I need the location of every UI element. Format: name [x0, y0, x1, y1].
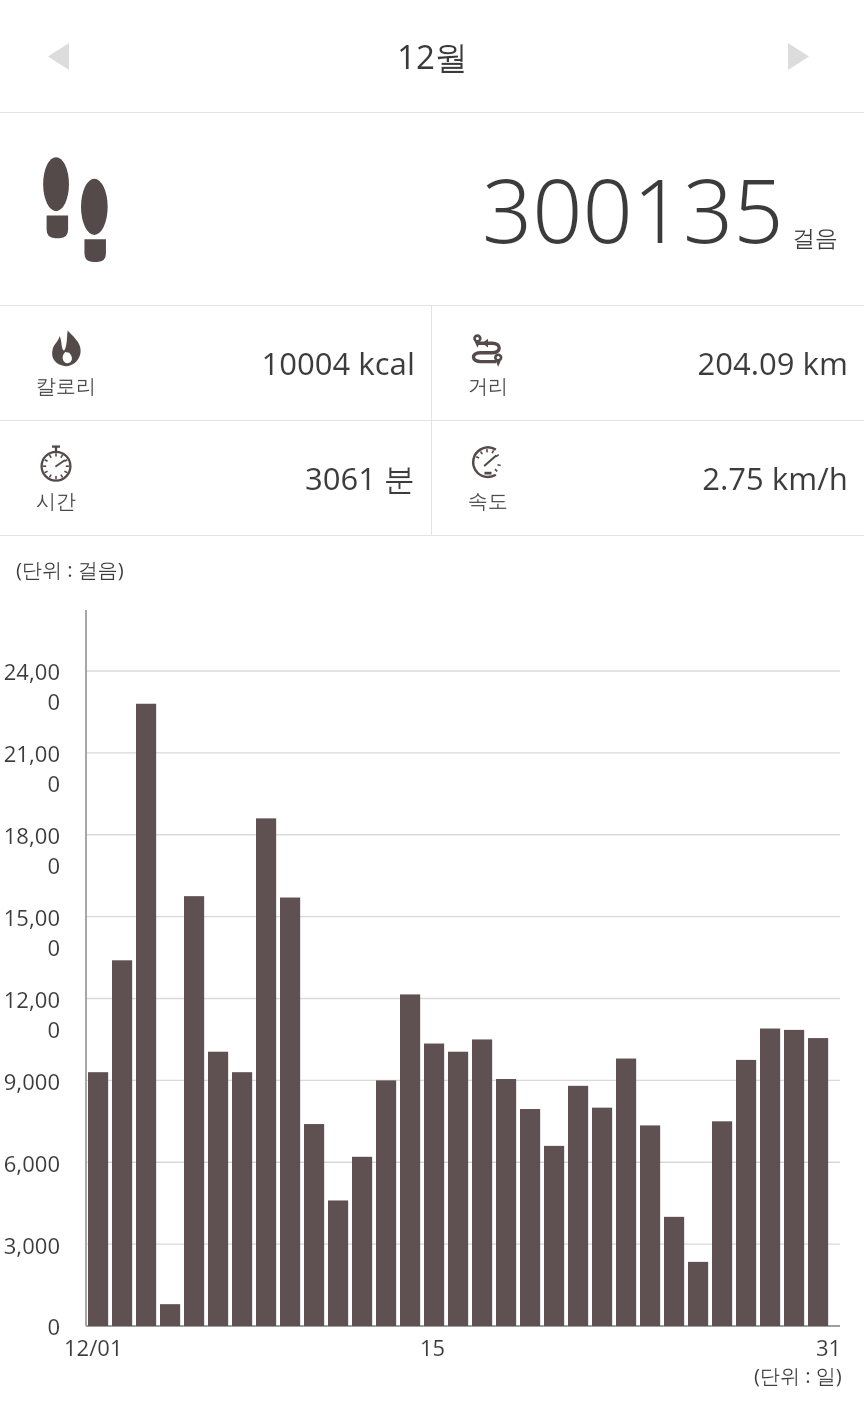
button[interactable]: 칼로리 — [0, 306, 431, 420]
button[interactable]: 시간 — [0, 421, 431, 535]
staticText: 300135 — [482, 149, 784, 269]
staticText: 12,000 — [0, 984, 60, 1044]
staticText: 15 — [420, 1332, 446, 1362]
staticText: 3,000 — [0, 1230, 60, 1260]
staticText: 6,000 — [0, 1148, 60, 1178]
button[interactable]: Steps — [0, 113, 864, 305]
other: Monthly steps bar chart — [0, 536, 864, 1403]
staticText: 18,000 — [0, 820, 60, 880]
staticText: 2.75 km/h — [542, 457, 848, 499]
staticText: 9,000 — [0, 1066, 60, 1096]
staticText: 24,000 — [0, 656, 60, 716]
staticText: 12/01 — [64, 1332, 123, 1362]
other: Steps — [38, 155, 124, 263]
staticText: 칼로리 — [36, 374, 96, 399]
staticText: 0 — [0, 1311, 60, 1341]
staticText: 204.09 km — [542, 342, 848, 384]
staticText: 거리 — [468, 374, 508, 399]
button[interactable]: 속도 — [432, 421, 864, 535]
staticText: 31 — [816, 1332, 842, 1362]
staticText: 걸음 — [792, 224, 838, 253]
staticText: 12월 — [397, 34, 468, 79]
staticText: 시간 — [36, 489, 76, 514]
staticText: 15,000 — [0, 902, 60, 962]
button[interactable]: Previous month — [24, 22, 92, 90]
button[interactable]: 거리 — [432, 306, 864, 420]
staticText: 속도 — [468, 489, 508, 514]
staticText: 21,000 — [0, 738, 60, 798]
button[interactable]: Next month — [764, 22, 832, 90]
staticText: (단위 : 일) — [754, 1362, 842, 1389]
staticText: 10004 kcal — [110, 342, 415, 384]
staticText: 3061 분 — [110, 457, 415, 499]
staticText: (단위 : 걸음) — [16, 556, 124, 583]
